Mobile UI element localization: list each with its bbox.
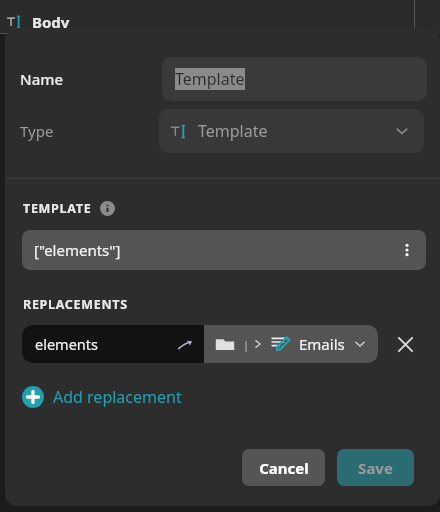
- staticText: |: [243, 337, 250, 352]
- button[interactable]: ["elements"]: [22, 230, 426, 270]
- staticText: Template: [175, 68, 245, 90]
- staticText: Save: [358, 458, 393, 478]
- staticText: Type: [20, 121, 54, 141]
- button[interactable]: Template: [159, 109, 424, 153]
- button[interactable]: Remove replacement: [390, 329, 420, 359]
- staticText: Cancel: [259, 458, 309, 478]
- staticText: ["elements"]: [34, 240, 121, 260]
- staticText: elements: [35, 334, 98, 354]
- staticText: TEMPLATE: [23, 200, 92, 217]
- button[interactable]: elements: [22, 325, 204, 363]
- button[interactable]: |: [204, 325, 378, 363]
- staticText: Name: [20, 69, 64, 89]
- button[interactable]: Cancel: [242, 449, 325, 486]
- staticText: Emails: [299, 334, 345, 354]
- button[interactable]: Save: [337, 449, 414, 486]
- staticText: REPLACEMENTS: [23, 296, 128, 313]
- button[interactable]: Template: [162, 57, 427, 101]
- staticText: Add replacement: [53, 386, 182, 408]
- button[interactable]: More options: [393, 236, 421, 264]
- button[interactable]: Add replacement: [22, 380, 182, 414]
- staticText: Template: [198, 120, 268, 142]
- staticText: Body: [32, 12, 70, 32]
